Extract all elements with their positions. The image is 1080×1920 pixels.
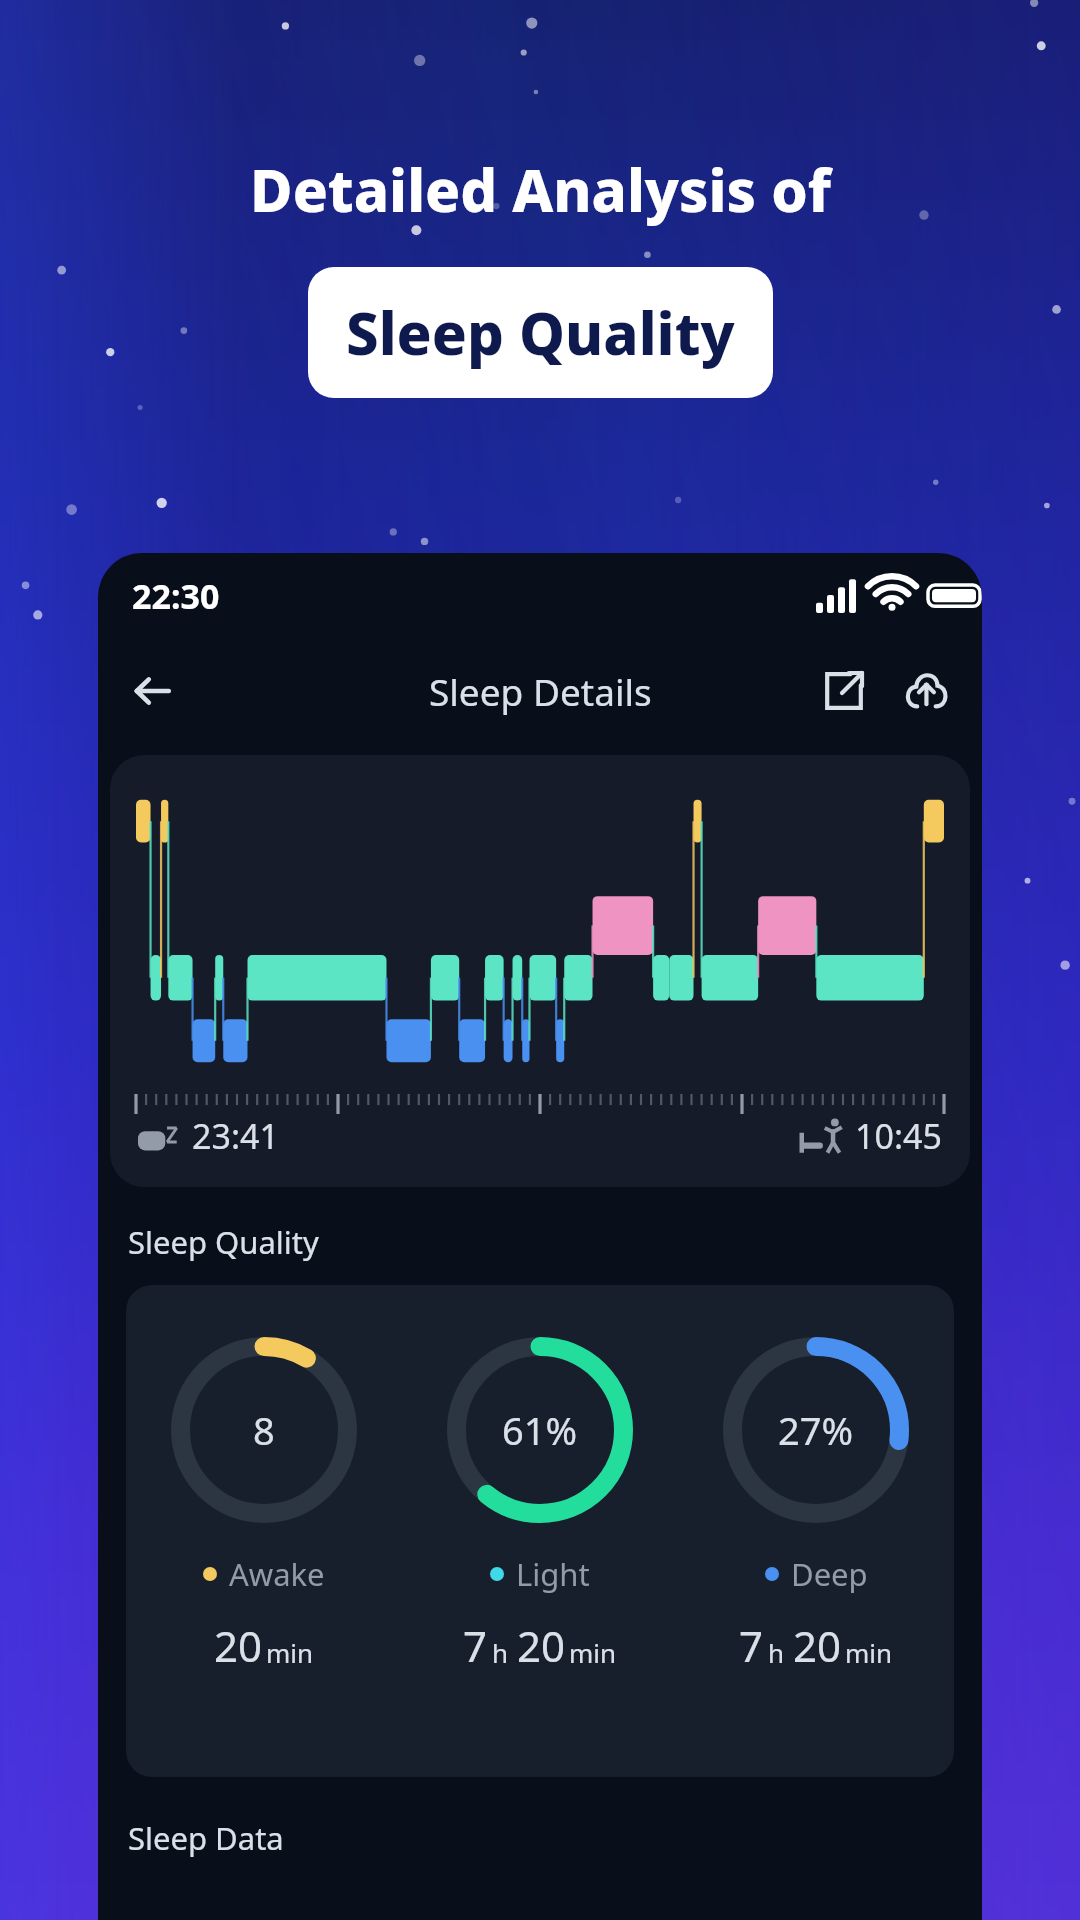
staticText: min (569, 1635, 617, 1670)
staticText: Sleep Details (429, 666, 652, 716)
staticText: Detailed Analysis of (250, 150, 831, 229)
staticText: min (845, 1635, 893, 1670)
staticText: Sleep Quality (128, 1221, 319, 1263)
button[interactable]: Share (806, 653, 882, 729)
staticText: 23:41 (192, 1113, 279, 1159)
button[interactable]: 8 (126, 1285, 954, 1777)
staticText: 27% (778, 1404, 854, 1456)
staticText: 7 (463, 1617, 488, 1674)
staticText: h (768, 1635, 785, 1670)
staticText: min (266, 1635, 314, 1670)
button[interactable]: Upload to cloud (888, 653, 964, 729)
staticText: h (492, 1635, 509, 1670)
staticText: Light (516, 1553, 590, 1595)
staticText: Awake (229, 1553, 325, 1595)
staticText: 61% (502, 1404, 578, 1456)
staticText: 20 (214, 1617, 263, 1674)
staticText: 10:45 (855, 1113, 942, 1159)
staticText: Sleep Quality (346, 293, 735, 372)
staticText: 22:30 (132, 573, 220, 619)
button[interactable]: 23:41 (110, 755, 970, 1187)
staticText: Sleep Data (128, 1817, 284, 1859)
button[interactable]: Back (114, 653, 190, 729)
staticText: 20 (517, 1617, 566, 1674)
staticText: Deep (791, 1553, 868, 1595)
staticText: 20 (793, 1617, 842, 1674)
staticText: 7 (739, 1617, 764, 1674)
staticText: 8 (253, 1404, 275, 1456)
